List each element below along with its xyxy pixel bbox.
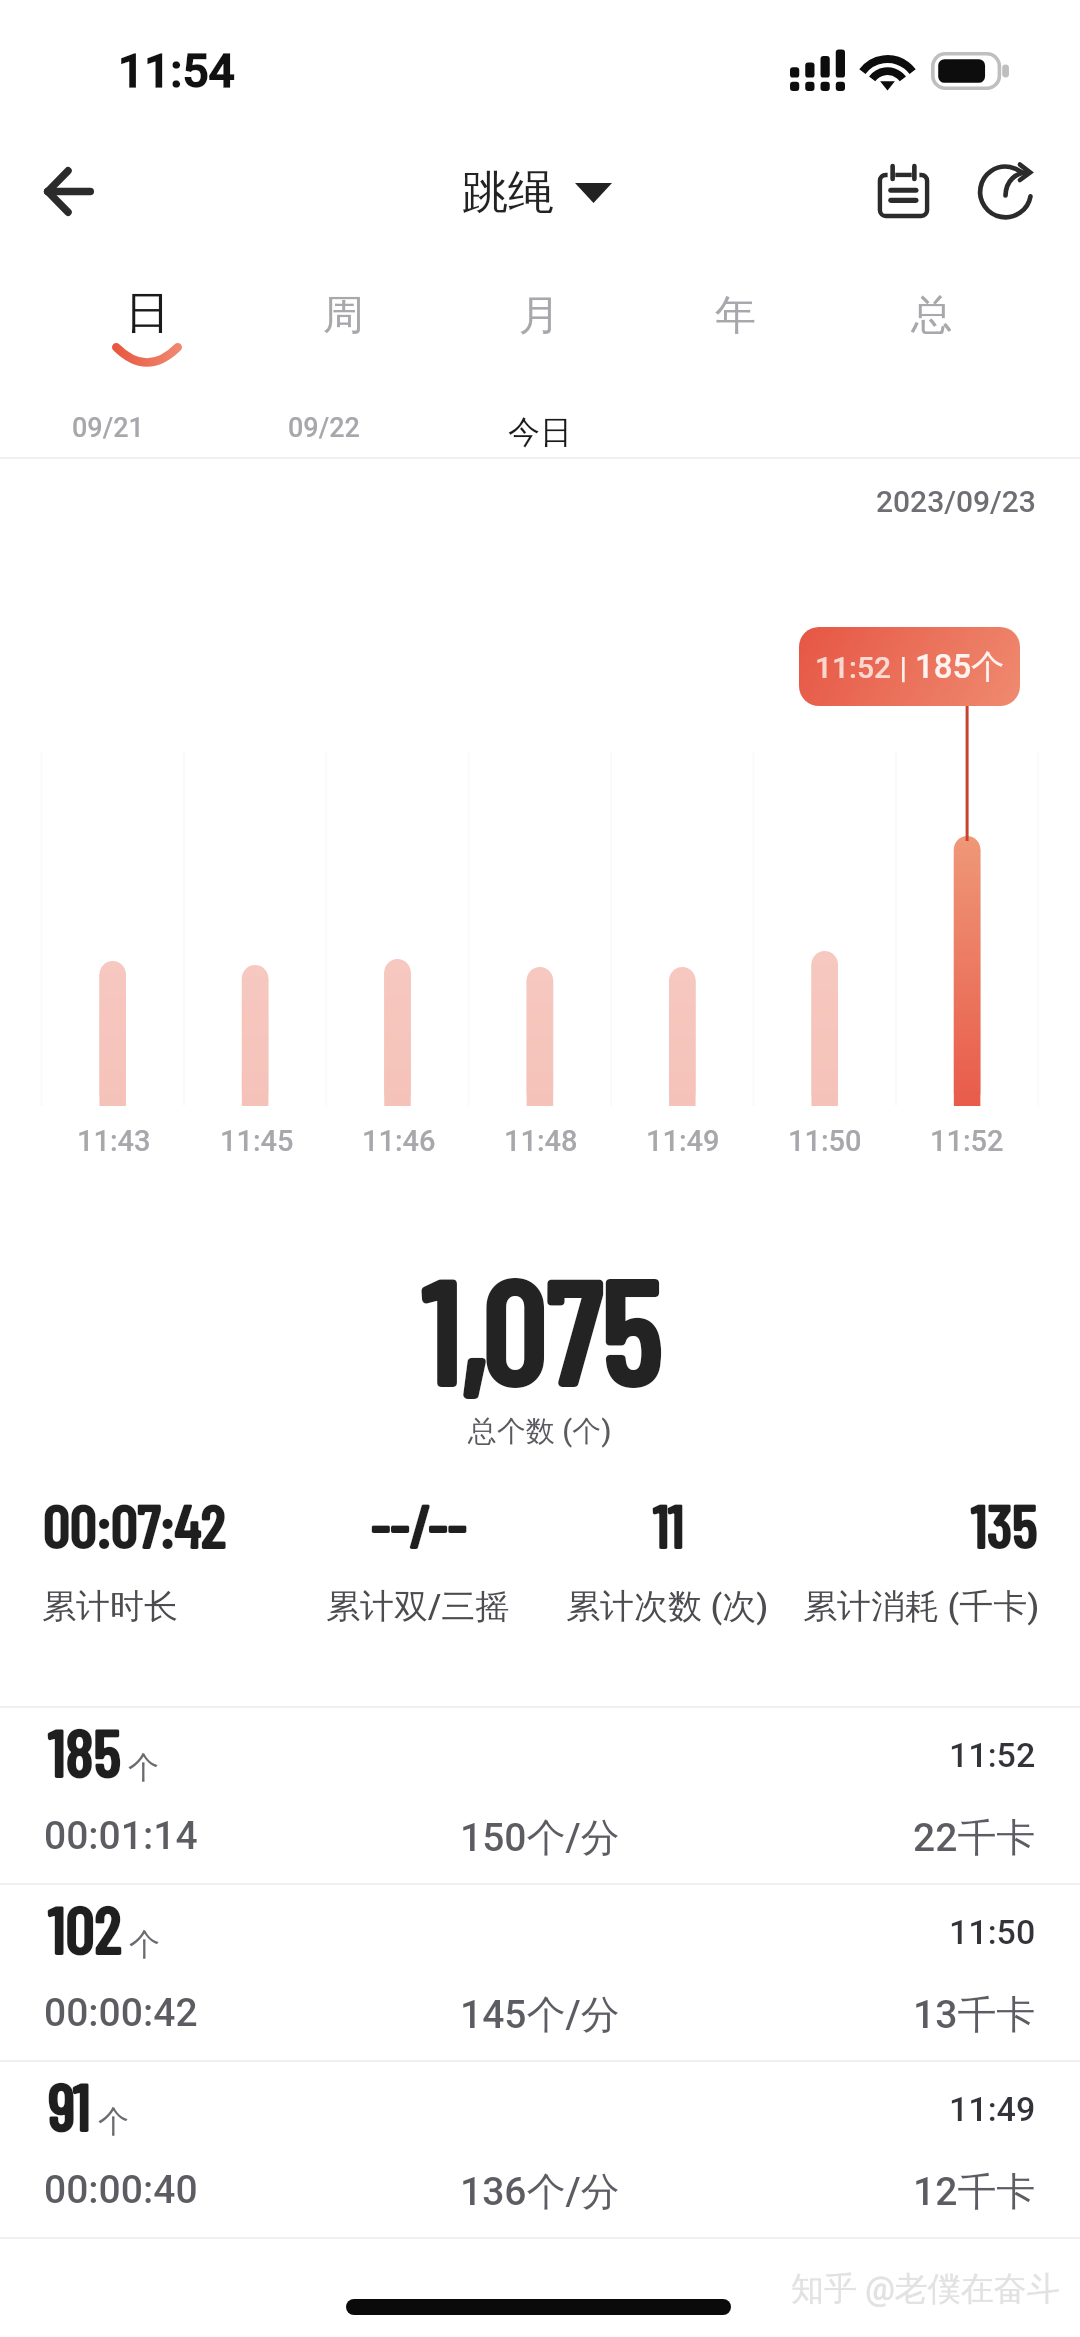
staticText: 135 [970, 1489, 1037, 1561]
button[interactable]: 年 [637, 262, 833, 377]
staticText: 00:00:42 [44, 1990, 198, 2036]
button[interactable]: 跳绳 [462, 157, 612, 229]
staticText: 11:54 [118, 44, 235, 98]
button[interactable]: 月 [441, 262, 637, 377]
staticText: 185 [47, 1713, 120, 1791]
staticText: 185个 [915, 646, 1005, 688]
button[interactable]: 日 [49, 262, 245, 377]
staticText: 11:50 [949, 1912, 1036, 1952]
button[interactable]: Share [950, 135, 1060, 245]
staticText: 知乎 @老僕在奋斗 [791, 2268, 1060, 2310]
staticText: 102 [47, 1890, 121, 1968]
staticText: 11:45 [220, 1124, 294, 1158]
staticText: 09/22 [288, 412, 360, 444]
staticText: 11:52 [949, 1735, 1036, 1775]
staticText: 11 [652, 1489, 683, 1561]
staticText: 日 [125, 285, 170, 342]
staticText: 累计消耗 (千卡) [803, 1585, 1040, 1628]
staticText: 150个/分 [460, 1813, 620, 1862]
staticText: 月 [519, 290, 560, 342]
staticText: 11:49 [646, 1124, 720, 1158]
button[interactable]: 102 [0, 1884, 1080, 2061]
staticText: 年 [715, 290, 756, 342]
staticText: 累计次数 (次) [566, 1585, 769, 1628]
staticText: 个 [98, 2102, 129, 2141]
button[interactable]: Back [14, 136, 124, 246]
button[interactable]: 总 [833, 262, 1029, 377]
staticText: 11:49 [949, 2089, 1036, 2129]
button[interactable]: 09/22 [216, 412, 432, 468]
staticText: 累计时长 [42, 1585, 178, 1628]
staticText: 13千卡 [913, 1990, 1036, 2039]
staticText: 2023/09/23 [876, 484, 1036, 519]
staticText: 累计双/三摇 [326, 1585, 510, 1628]
staticText: 11:43 [77, 1124, 151, 1158]
staticText: 12千卡 [913, 2167, 1036, 2216]
staticText: 11:46 [362, 1124, 436, 1158]
staticText: 91 [47, 2067, 90, 2145]
staticText: 145个/分 [460, 1990, 620, 2039]
staticText: -‌-/-‌- [370, 1489, 466, 1561]
button[interactable]: 周 [245, 262, 441, 377]
staticText: | [892, 650, 915, 685]
staticText: 个 [128, 1748, 159, 1787]
button[interactable]: 185 [0, 1707, 1080, 1884]
staticText: 00:07:42 [42, 1489, 225, 1561]
staticText: 个 [129, 1925, 160, 1964]
button[interactable]: 今日 [432, 412, 648, 468]
staticText: 11:52 [815, 650, 892, 685]
staticText: 今日 [508, 412, 572, 452]
staticText: 22千卡 [913, 1813, 1036, 1862]
staticText: 11:48 [504, 1124, 578, 1158]
button[interactable]: Records [848, 134, 958, 244]
staticText: 136个/分 [460, 2167, 620, 2216]
button[interactable]: 09/21 [0, 412, 216, 468]
staticText: 总个数 (个) [468, 1413, 612, 1450]
staticText: 11:52 [930, 1124, 1004, 1158]
staticText: 周 [323, 290, 364, 342]
staticText: 00:00:40 [44, 2167, 198, 2213]
staticText: 1,075 [420, 1243, 660, 1416]
staticText: 11:50 [788, 1124, 862, 1158]
staticText: 09/21 [72, 412, 144, 444]
staticText: 总 [911, 290, 952, 342]
staticText: 跳绳 [462, 164, 554, 222]
button[interactable]: 91 [0, 2061, 1080, 2238]
staticText: 00:01:14 [44, 1813, 198, 1859]
